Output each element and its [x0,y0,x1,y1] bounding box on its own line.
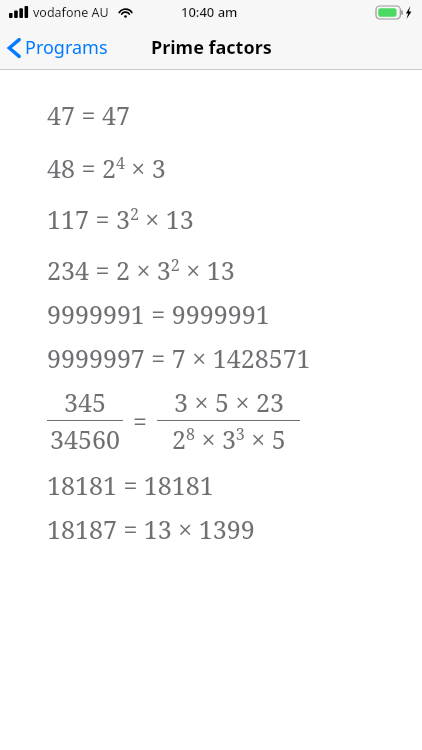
staticText: 28 × 33 × 5 [172,422,286,456]
staticText: 34560 [50,422,120,456]
staticText: Programs [25,35,108,60]
staticText: vodafone AU [33,4,109,21]
staticText: = [133,404,147,438]
staticText: 47 = 47 [47,98,130,132]
staticText: 234 = 2 × 32 × 13 [47,253,235,287]
staticText: 48 = 24 × 3 [47,151,166,185]
staticText: 10:40 am [181,3,238,21]
staticText: Prime factors [151,35,272,60]
staticText: 9999997 = 7 × 1428571 [47,341,311,375]
staticText: 117 = 32 × 13 [47,202,194,236]
staticText: 18187 = 13 × 1399 [47,512,255,546]
button[interactable]: Programs [0,31,118,64]
staticText: 9999991 = 9999991 [47,297,270,331]
staticText: 3 × 5 × 23 [174,385,284,419]
staticText: 18181 = 18181 [47,468,214,502]
staticText: 345 [64,385,106,419]
